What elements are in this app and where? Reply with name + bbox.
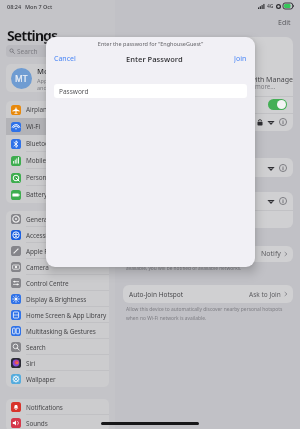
staticText: Control Centre: [26, 279, 69, 288]
staticText: Mon 7 Oct: [25, 3, 53, 10]
button[interactable]: [129, 211, 287, 228]
button[interactable]: Search: [6, 339, 109, 355]
button[interactable]: Edit: [276, 16, 293, 30]
staticText: Auto-Join Hotspot: [129, 290, 184, 299]
staticText: Notifications: [26, 403, 63, 412]
button[interactable]: Display & Brightness: [6, 291, 109, 307]
button[interactable]: Notifications: [6, 399, 109, 415]
staticText: available, you will be notified of avail…: [126, 265, 242, 272]
staticText: Apple devices use privacy protection wit…: [129, 75, 293, 85]
staticText: MT: [15, 73, 28, 85]
button[interactable]: Siri: [6, 355, 109, 371]
staticText: Siri: [26, 359, 36, 368]
button[interactable]: Control Centre: [6, 275, 109, 291]
button[interactable]: Multitasking & Gestures: [6, 323, 109, 339]
staticText: Home Screen & App Library: [26, 311, 107, 320]
button[interactable]: Bluetooth: [6, 135, 109, 152]
button[interactable]: Battery: [6, 186, 109, 203]
staticText: Enter Password: [126, 54, 183, 64]
staticText: 4G: [267, 3, 274, 10]
button[interactable]: Notify: [123, 246, 293, 262]
button[interactable]: Password: [54, 84, 247, 98]
staticText: Mo: [37, 66, 49, 76]
staticText: Enter the password for “EnghouseGuest”: [46, 40, 255, 47]
button[interactable]: Personal Hotspot: [6, 169, 109, 186]
staticText: Camera: [26, 263, 49, 272]
button[interactable]: Apple Pencil: [6, 243, 109, 259]
button[interactable]: MT: [6, 64, 109, 92]
staticText: Search: [26, 343, 46, 352]
button[interactable]: Camera: [6, 259, 109, 275]
staticText: Apple Pencil: [26, 247, 62, 256]
button[interactable]: Wallpaper: [6, 371, 109, 387]
staticText: Wi-Fi: [26, 122, 41, 131]
staticText: Settings: [7, 26, 58, 45]
staticText: Airplane Mode: [26, 105, 69, 114]
staticText: for all of your known Wi-Fi networks. Le…: [129, 82, 276, 90]
staticText: Bluetooth: [26, 139, 55, 148]
staticText: Appl: [37, 77, 49, 84]
button[interactable]: General: [6, 211, 109, 227]
button[interactable]: Join: [226, 52, 255, 65]
button[interactable]: [123, 158, 293, 177]
button[interactable]: [129, 192, 287, 210]
staticText: Accessibility: [26, 231, 61, 240]
staticText: Ask to Join: [249, 290, 281, 299]
staticText: when no Wi-Fi network is available.: [126, 315, 207, 322]
staticText: Mobile Data: [26, 156, 62, 165]
staticText: and: [37, 84, 47, 91]
staticText: Battery: [26, 190, 48, 199]
staticText: Cancel: [54, 54, 76, 63]
staticText: Allow this device to automatically disco…: [126, 306, 283, 313]
button[interactable]: Mobile Data: [6, 152, 109, 169]
staticText: Sounds: [26, 419, 48, 428]
staticText: 08:24: [7, 3, 22, 10]
button[interactable]: EnghouseGuest: [129, 113, 287, 131]
button[interactable]: Home Screen & App Library: [6, 307, 109, 323]
button[interactable]: Wi-Fi: [129, 96, 287, 113]
button[interactable]: Sounds: [6, 415, 109, 429]
staticText: Edit: [278, 18, 291, 28]
button[interactable]: Accessibility: [6, 227, 109, 243]
button[interactable]: Search: [6, 45, 109, 57]
button[interactable]: Airplane Mode: [6, 101, 109, 118]
button[interactable]: Wi-Fi: [6, 118, 109, 135]
staticText: Join: [234, 54, 247, 63]
staticText: Notify: [261, 249, 281, 259]
button[interactable]: Wi-Fi toggle: [268, 99, 287, 110]
staticText: Multitasking & Gestures: [26, 327, 96, 336]
button[interactable]: Cancel: [46, 52, 84, 65]
staticText: Personal Hotspot: [26, 173, 77, 182]
staticText: Display & Brightness: [26, 295, 87, 304]
staticText: General: [26, 215, 49, 224]
staticText: Wi-Fi: [129, 41, 146, 51]
staticText: Search: [17, 47, 38, 56]
button[interactable]: Auto-Join Hotspot: [123, 285, 293, 303]
staticText: Wallpaper: [26, 375, 56, 384]
staticText: Password: [59, 87, 89, 96]
